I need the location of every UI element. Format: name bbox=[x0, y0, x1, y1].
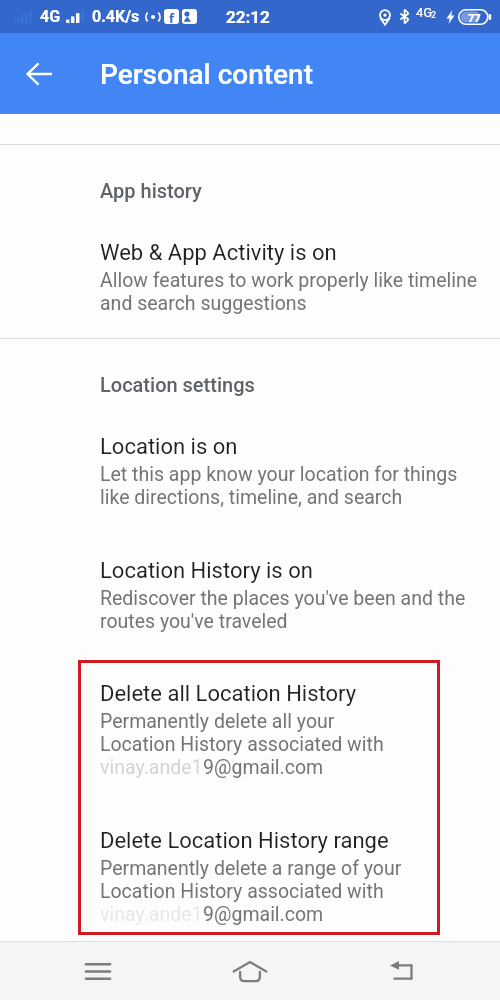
staticText: 22:12 bbox=[226, 7, 270, 27]
button[interactable]: Web & App Activity is on bbox=[0, 240, 500, 315]
button[interactable]: Back bbox=[372, 947, 432, 995]
staticText: Permanently delete a range of your Locat… bbox=[100, 857, 402, 903]
staticText: Delete all Location History bbox=[100, 681, 357, 707]
button[interactable]: Location is on bbox=[0, 434, 500, 509]
button[interactable]: Delete all Location History bbox=[0, 681, 500, 779]
staticText: 4G bbox=[416, 5, 433, 20]
staticText: 77 bbox=[468, 10, 481, 25]
staticText: 9@gmail.com bbox=[203, 903, 324, 926]
staticText: App history bbox=[100, 179, 202, 202]
staticText: Web & App Activity is on bbox=[100, 240, 337, 266]
button[interactable]: Location History is on bbox=[0, 558, 500, 633]
staticText: Personal content bbox=[100, 58, 313, 91]
staticText: Delete Location History range bbox=[100, 828, 389, 854]
staticText: vinay.ande1 bbox=[100, 756, 203, 779]
button[interactable]: Back bbox=[15, 50, 63, 98]
staticText: Rediscover the places you've been and th… bbox=[100, 587, 466, 633]
button[interactable]: Home bbox=[220, 947, 280, 995]
staticText: Let this app know your location for thin… bbox=[100, 463, 458, 509]
staticText: Location settings bbox=[100, 373, 255, 396]
staticText: 2 bbox=[431, 10, 437, 21]
staticText: f bbox=[169, 9, 175, 24]
staticText: Permanently delete all your Location His… bbox=[100, 710, 384, 756]
staticText: 0.4K/s bbox=[92, 7, 140, 26]
button[interactable]: Delete Location History range bbox=[0, 828, 500, 926]
staticText: Location is on bbox=[100, 434, 238, 460]
staticText: Allow features to work properly like tim… bbox=[100, 269, 478, 315]
staticText: vinay.ande1 bbox=[100, 903, 203, 926]
staticText: 4G bbox=[40, 7, 61, 26]
staticText: 9@gmail.com bbox=[203, 756, 324, 779]
staticText: Location History is on bbox=[100, 558, 313, 584]
button[interactable]: Menu bbox=[68, 947, 128, 995]
